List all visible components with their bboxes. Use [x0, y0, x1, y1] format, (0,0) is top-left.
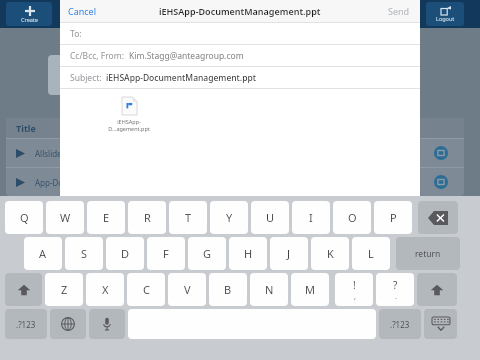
button[interactable]: T: [169, 201, 207, 234]
button[interactable]: Switch keyboard: [50, 309, 86, 339]
staticText: Create: [21, 16, 38, 23]
staticText: I: [309, 210, 313, 225]
button[interactable]: Cancel: [68, 5, 97, 17]
staticText: A: [39, 246, 47, 261]
staticText: Title: [16, 122, 36, 134]
button[interactable]: O: [333, 201, 371, 234]
staticText: Subject:: [70, 72, 106, 84]
button[interactable]: H: [229, 237, 267, 270]
staticText: D: [121, 246, 130, 261]
button[interactable]: S: [65, 237, 103, 270]
staticText: Z: [61, 282, 68, 297]
button[interactable]: iEHSApp-D...agement.ppt: [100, 97, 158, 132]
button[interactable]: A: [24, 237, 62, 270]
button[interactable]: Y: [210, 201, 248, 234]
button[interactable]: Create: [6, 2, 52, 26]
staticText: J: [287, 246, 291, 261]
button[interactable]: I: [292, 201, 330, 234]
button[interactable]: G: [188, 237, 226, 270]
staticText: Q: [20, 210, 29, 225]
button[interactable]: W: [46, 201, 84, 234]
staticText: E: [103, 210, 110, 225]
button[interactable]: Dictate: [89, 309, 125, 339]
staticText: G: [203, 246, 212, 261]
staticText: Allslideshop...ttp: [35, 148, 98, 159]
staticText: S: [81, 246, 88, 261]
button[interactable]: App-Docum...um: [6, 168, 464, 196]
staticText: App-Docum...um: [35, 177, 99, 188]
button[interactable]: Send: [388, 5, 410, 17]
staticText: iEHSApp-DocumentManagement.ppt: [159, 5, 321, 17]
staticText: O: [348, 210, 357, 225]
staticText: B: [224, 282, 232, 297]
staticText: !: [353, 278, 356, 292]
button[interactable]: C: [127, 273, 165, 306]
button[interactable]: J: [270, 237, 308, 270]
button[interactable]: L: [352, 237, 390, 270]
button[interactable]: K: [311, 237, 349, 270]
staticText: Y: [226, 210, 233, 225]
staticText: U: [266, 210, 275, 225]
staticText: ,: [354, 292, 356, 302]
staticText: V: [184, 282, 191, 297]
staticText: R: [144, 210, 151, 225]
button[interactable]: F: [147, 237, 185, 270]
staticText: K: [327, 246, 334, 261]
button[interactable]: Subject:: [60, 67, 420, 88]
staticText: Cc/Bcc, From:: [70, 50, 129, 62]
button[interactable]: ?: [376, 273, 414, 306]
button[interactable]: X: [86, 273, 124, 306]
button[interactable]: R: [128, 201, 166, 234]
staticText: .?123: [16, 319, 36, 330]
staticText: return: [415, 248, 441, 260]
staticText: F: [163, 246, 169, 261]
staticText: .?123: [390, 319, 410, 330]
staticText: N: [265, 282, 274, 297]
staticText: X: [102, 282, 109, 297]
button[interactable]: Numbers: [379, 309, 421, 339]
button[interactable]: !: [335, 273, 373, 306]
staticText: L: [368, 246, 374, 261]
button[interactable]: Refresh: [434, 146, 448, 160]
button[interactable]: Shift: [417, 273, 457, 306]
button[interactable]: Q: [5, 201, 43, 234]
button[interactable]: Return: [396, 237, 460, 270]
button[interactable]: Hide keyboard: [424, 309, 457, 339]
staticText: ?: [393, 278, 398, 292]
button[interactable]: B: [209, 273, 247, 306]
button[interactable]: Z: [45, 273, 83, 306]
staticText: W: [60, 210, 71, 225]
button[interactable]: U: [251, 201, 289, 234]
button[interactable]: Allslideshop...ttp: [6, 139, 464, 167]
staticText: Kim.Stagg@anteagroup.com: [129, 50, 244, 62]
button[interactable]: V: [168, 273, 206, 306]
staticText: iEHSApp-DocumentManagement.ppt: [106, 72, 256, 84]
button[interactable]: N: [250, 273, 288, 306]
button[interactable]: E: [87, 201, 125, 234]
button[interactable]: Backspace: [418, 201, 458, 234]
button[interactable]: P: [374, 201, 412, 234]
button[interactable]: To:: [60, 23, 420, 44]
button[interactable]: Numbers: [5, 309, 47, 339]
staticText: P: [390, 210, 397, 225]
button[interactable]: Shift: [5, 273, 42, 306]
button[interactable]: Refresh: [434, 175, 448, 189]
staticText: C: [143, 282, 150, 297]
staticText: T: [185, 210, 192, 225]
staticText: H: [244, 246, 253, 261]
staticText: M: [305, 282, 315, 297]
staticText: .: [395, 292, 397, 302]
staticText: To:: [70, 28, 82, 40]
staticText: iEHSApp-D...agement.ppt: [100, 118, 158, 132]
button[interactable]: D: [106, 237, 144, 270]
button[interactable]: M: [291, 273, 329, 306]
button[interactable]: Logout: [426, 2, 464, 26]
button[interactable]: Cc/Bcc, From:: [60, 45, 420, 66]
staticText: Logout: [436, 15, 455, 22]
